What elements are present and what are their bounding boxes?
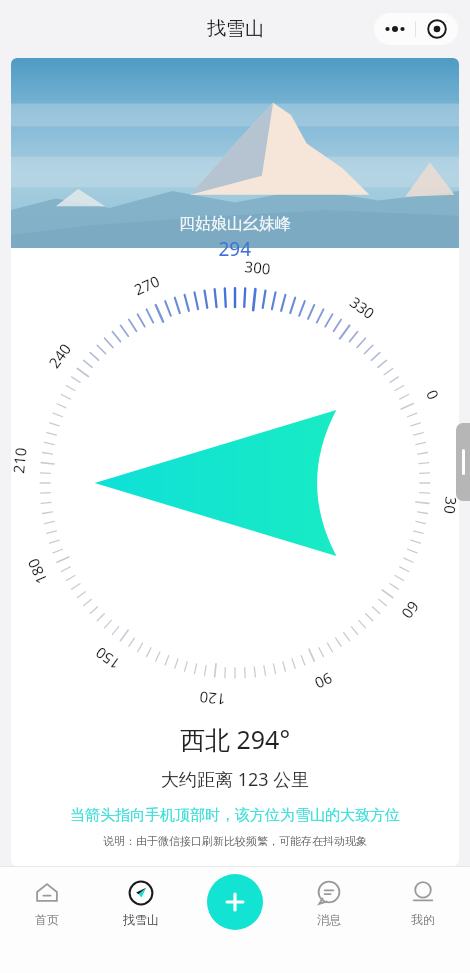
staticText: 说明：由于微信接口刷新比较频繁，可能存在抖动现象 [103,834,367,848]
staticText: 找雪山 [123,912,159,927]
button[interactable]: 消息 [282,876,376,931]
staticText: 大约距离 123 公里 [161,767,310,792]
button[interactable]: More [374,13,415,45]
button[interactable]: Close [416,13,458,45]
staticText: 当箭头指向手机顶部时，该方位为雪山的大致方位 [70,806,400,825]
button[interactable]: 首页 [0,876,94,931]
button[interactable]: Add [207,874,263,930]
staticText: 西北 294° [180,722,291,756]
staticText: 找雪山 [207,17,264,41]
button[interactable]: Drawer handle [456,423,470,501]
staticText: 消息 [317,912,341,927]
staticText: 首页 [35,912,59,927]
button[interactable]: 找雪山 [94,876,188,931]
button[interactable]: 我的 [376,876,470,931]
staticText: 四姑娘山幺妹峰 [179,214,291,234]
staticText: 我的 [411,912,435,927]
